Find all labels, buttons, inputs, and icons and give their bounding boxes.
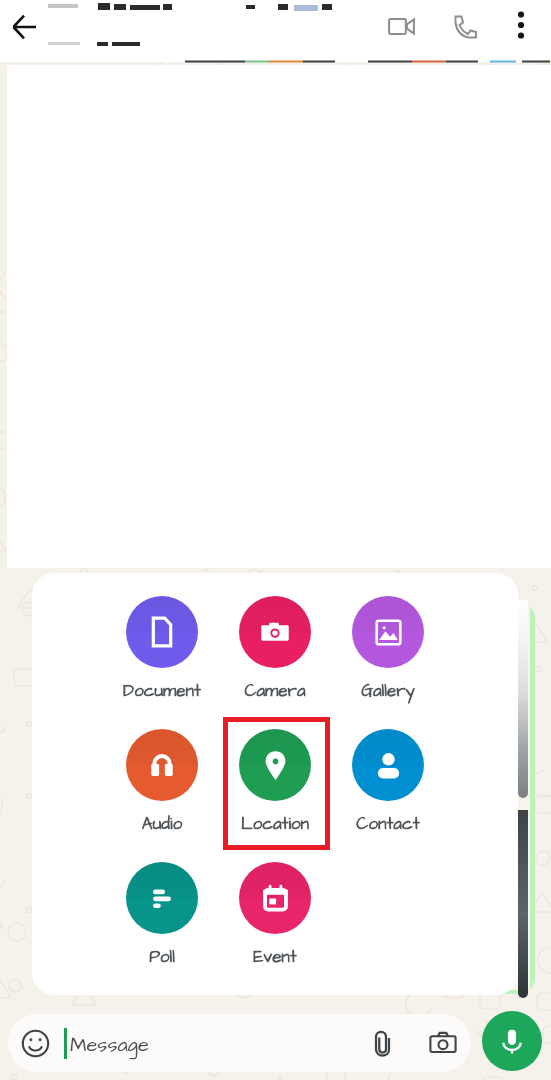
button[interactable]: Audio xyxy=(110,724,214,836)
button[interactable]: Emoji xyxy=(13,1021,57,1065)
staticText: Audio xyxy=(110,812,214,836)
button[interactable]: Poll xyxy=(110,857,214,969)
button[interactable]: Back xyxy=(0,0,52,55)
button[interactable]: More options xyxy=(499,3,543,47)
button[interactable]: Record voice message xyxy=(482,1011,542,1071)
button[interactable]: Video call xyxy=(377,2,425,50)
staticText: Contact xyxy=(336,812,440,836)
staticText: Gallery xyxy=(336,679,440,703)
button[interactable]: Camera xyxy=(421,1021,465,1065)
button[interactable]: Gallery xyxy=(336,591,440,703)
button[interactable]: Emoji xyxy=(8,1014,471,1072)
button[interactable]: Contact xyxy=(336,724,440,836)
button[interactable]: Camera xyxy=(223,591,327,703)
button[interactable]: Voice call xyxy=(441,2,489,50)
button[interactable]: Attach xyxy=(361,1021,405,1065)
button[interactable]: Document xyxy=(110,591,214,703)
staticText: Camera xyxy=(223,679,327,703)
staticText: Document xyxy=(110,679,214,703)
staticText: Message xyxy=(70,1031,149,1059)
staticText: Event xyxy=(223,945,327,969)
button[interactable]: Event xyxy=(223,857,327,969)
staticText: Location xyxy=(223,812,327,836)
button[interactable]: Location xyxy=(223,724,327,836)
staticText: Poll xyxy=(110,945,214,969)
